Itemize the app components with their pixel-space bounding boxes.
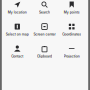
button[interactable]: My location xyxy=(4,0,31,22)
button[interactable]: Select on map xyxy=(4,22,31,44)
staticText: Clipboard xyxy=(37,54,52,58)
button[interactable]: Screen center xyxy=(31,22,58,44)
staticText: Contact xyxy=(11,54,23,58)
button[interactable]: Contact xyxy=(4,44,31,66)
staticText: Search xyxy=(39,10,50,14)
staticText: My points xyxy=(64,10,80,14)
button[interactable]: Projection xyxy=(58,44,85,66)
staticText: Screen center xyxy=(33,32,55,36)
button[interactable]: My points xyxy=(58,0,85,22)
button[interactable]: Search xyxy=(31,0,58,22)
staticText: Coordinates xyxy=(62,32,81,36)
button[interactable]: Coordinates xyxy=(58,22,85,44)
staticText: Projection xyxy=(64,54,80,58)
staticText: Select on map xyxy=(6,32,29,36)
staticText: My location xyxy=(8,10,27,14)
button[interactable]: Clipboard xyxy=(31,44,58,66)
